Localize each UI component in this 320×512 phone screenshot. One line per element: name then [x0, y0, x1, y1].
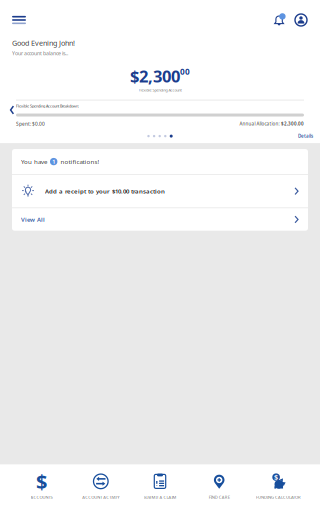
button[interactable]: ACCOUNT ACTIVITY	[71, 464, 130, 512]
staticText: $	[36, 468, 47, 495]
staticText: Good Evening John!	[12, 38, 75, 48]
staticText: 1	[52, 158, 55, 165]
staticText: Details	[298, 133, 313, 139]
button[interactable]: SUBMIT A CLAIM	[130, 464, 190, 512]
staticText: FUNDING CALCULATOR	[256, 494, 301, 500]
staticText: FIND CARE	[209, 494, 230, 500]
button[interactable]: Details	[292, 131, 320, 141]
button[interactable]: Menu	[6, 10, 32, 30]
staticText: $	[274, 472, 278, 482]
button[interactable]: Profile	[293, 10, 309, 30]
button[interactable]: Add a receipt to your $10.00 transaction	[12, 175, 308, 207]
button[interactable]: $	[12, 464, 71, 512]
staticText: You have	[21, 157, 47, 166]
staticText: notifications!	[60, 157, 99, 166]
button[interactable]: FIND CARE	[190, 464, 249, 512]
staticText: 00	[180, 66, 190, 77]
button[interactable]: $	[249, 464, 308, 512]
button[interactable]: Notifications	[271, 10, 287, 30]
staticText: View All	[21, 215, 45, 223]
staticText: Flexible Spending Account Breakdown:	[16, 103, 79, 109]
staticText: $2,300.00	[281, 121, 304, 127]
staticText: SUBMIT A CLAIM	[143, 494, 176, 500]
staticText: Flexible Spending Account	[138, 87, 181, 93]
staticText: $2,300	[130, 65, 180, 87]
staticText: Spent: $0.00	[16, 121, 45, 127]
button[interactable]: Previous account	[8, 103, 16, 116]
staticText: ACCOUNT ACTIVITY	[82, 494, 119, 500]
button[interactable]: View All	[12, 208, 308, 231]
staticText: Your account balance is...	[12, 50, 68, 57]
staticText: Annual Allocation:	[239, 121, 279, 127]
staticText: Add a receipt to your $10.00 transaction	[45, 187, 165, 195]
staticText: ACCOUNTS	[31, 494, 53, 500]
